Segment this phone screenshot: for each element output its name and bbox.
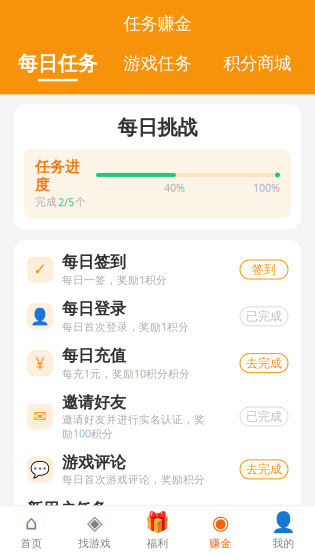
staticText: 每日挑战 <box>117 115 197 140</box>
staticText: 首页 <box>20 537 42 550</box>
staticText: 👤 <box>271 511 296 534</box>
button[interactable]: ✉ <box>14 387 301 446</box>
button[interactable]: ◉ <box>189 511 252 550</box>
staticText: 完成 <box>35 195 57 209</box>
staticText: 新用户任务 <box>27 499 107 519</box>
staticText: 2/5 <box>58 195 74 209</box>
button[interactable]: 👤 <box>252 511 315 550</box>
staticText: 每日登录 <box>62 299 126 319</box>
staticText: 任务进度 <box>35 158 80 194</box>
staticText: 积分商城 <box>223 53 291 74</box>
button[interactable]: 每日任务 <box>8 49 108 83</box>
staticText: 👤 <box>30 307 50 325</box>
staticText: 去完成 <box>246 356 282 370</box>
button[interactable]: 积分商城 <box>207 51 307 82</box>
staticText: ✉ <box>33 407 46 426</box>
button[interactable]: ¥ <box>14 340 301 387</box>
staticText: 我的 <box>272 537 294 550</box>
staticText: ◈ <box>87 511 102 534</box>
button[interactable]: 👤 <box>14 521 301 556</box>
button[interactable]: ◈ <box>63 511 126 550</box>
staticText: 每日一签，奖励1积分 <box>62 273 167 287</box>
button[interactable]: 💬 <box>14 446 301 492</box>
staticText: ¥ <box>35 352 44 374</box>
staticText: 每日充值 <box>62 346 126 365</box>
staticText: 赚金 <box>209 537 231 550</box>
staticText: 上传头像 <box>62 527 126 547</box>
staticText: 邀请好友并进行实名认证，奖励100积分 <box>62 413 205 440</box>
button[interactable]: 👤 <box>14 293 301 340</box>
staticText: 每充1元，奖励10积分积分 <box>62 366 190 381</box>
staticText: 找游戏 <box>78 537 111 550</box>
staticText: 100% <box>253 180 280 195</box>
staticText: 💬 <box>30 460 50 478</box>
staticText: 个 <box>75 195 86 209</box>
button[interactable]: 🎁 <box>126 511 189 550</box>
staticText: 邀请好友 <box>62 393 126 412</box>
staticText: 已完成 <box>246 309 282 324</box>
staticText: 任务赚金 <box>123 13 191 34</box>
staticText: 奖励1积分 <box>62 548 112 556</box>
staticText: ⌂ <box>25 511 38 534</box>
staticText: 每日签到 <box>62 252 126 272</box>
staticText: 游戏评论 <box>62 452 126 472</box>
button[interactable]: ✓ <box>14 246 301 293</box>
button[interactable]: 游戏任务 <box>108 51 207 82</box>
staticText: 每日首次登录，奖励1积分 <box>62 320 189 334</box>
staticText: 40% <box>164 180 185 195</box>
button[interactable]: ⌂ <box>0 511 63 550</box>
staticText: 福利 <box>146 537 168 550</box>
staticText: 每日任务 <box>18 51 98 76</box>
staticText: 每日首次游戏评论，奖励积分 <box>62 473 205 486</box>
staticText: 去完成 <box>246 462 282 477</box>
staticText: 🎁 <box>145 511 170 534</box>
staticText: 👤 <box>30 535 50 553</box>
staticText: 签到 <box>252 262 276 277</box>
staticText: 已完成 <box>246 409 282 424</box>
staticText: 游戏任务 <box>123 53 191 74</box>
staticText: ✓ <box>33 260 46 279</box>
staticText: 已完成 <box>246 537 282 552</box>
staticText: ◉ <box>212 511 229 534</box>
